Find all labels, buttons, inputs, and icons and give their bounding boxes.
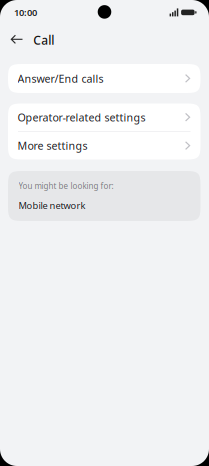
button[interactable]: Mobile network [8,199,200,222]
button[interactable]: Back [6,31,27,49]
staticText: You might be looking for: [18,180,113,191]
staticText: Call [33,32,54,48]
button[interactable]: More settings [8,132,200,159]
staticText: Answer/End calls [17,71,103,86]
staticText: More settings [17,139,87,153]
staticText: Mobile network [18,199,85,211]
button[interactable]: Operator-related settings [8,103,200,131]
staticText: Operator-related settings [17,110,145,124]
staticText: 10:00 [14,6,37,19]
button[interactable]: Answer/End calls [8,64,200,93]
